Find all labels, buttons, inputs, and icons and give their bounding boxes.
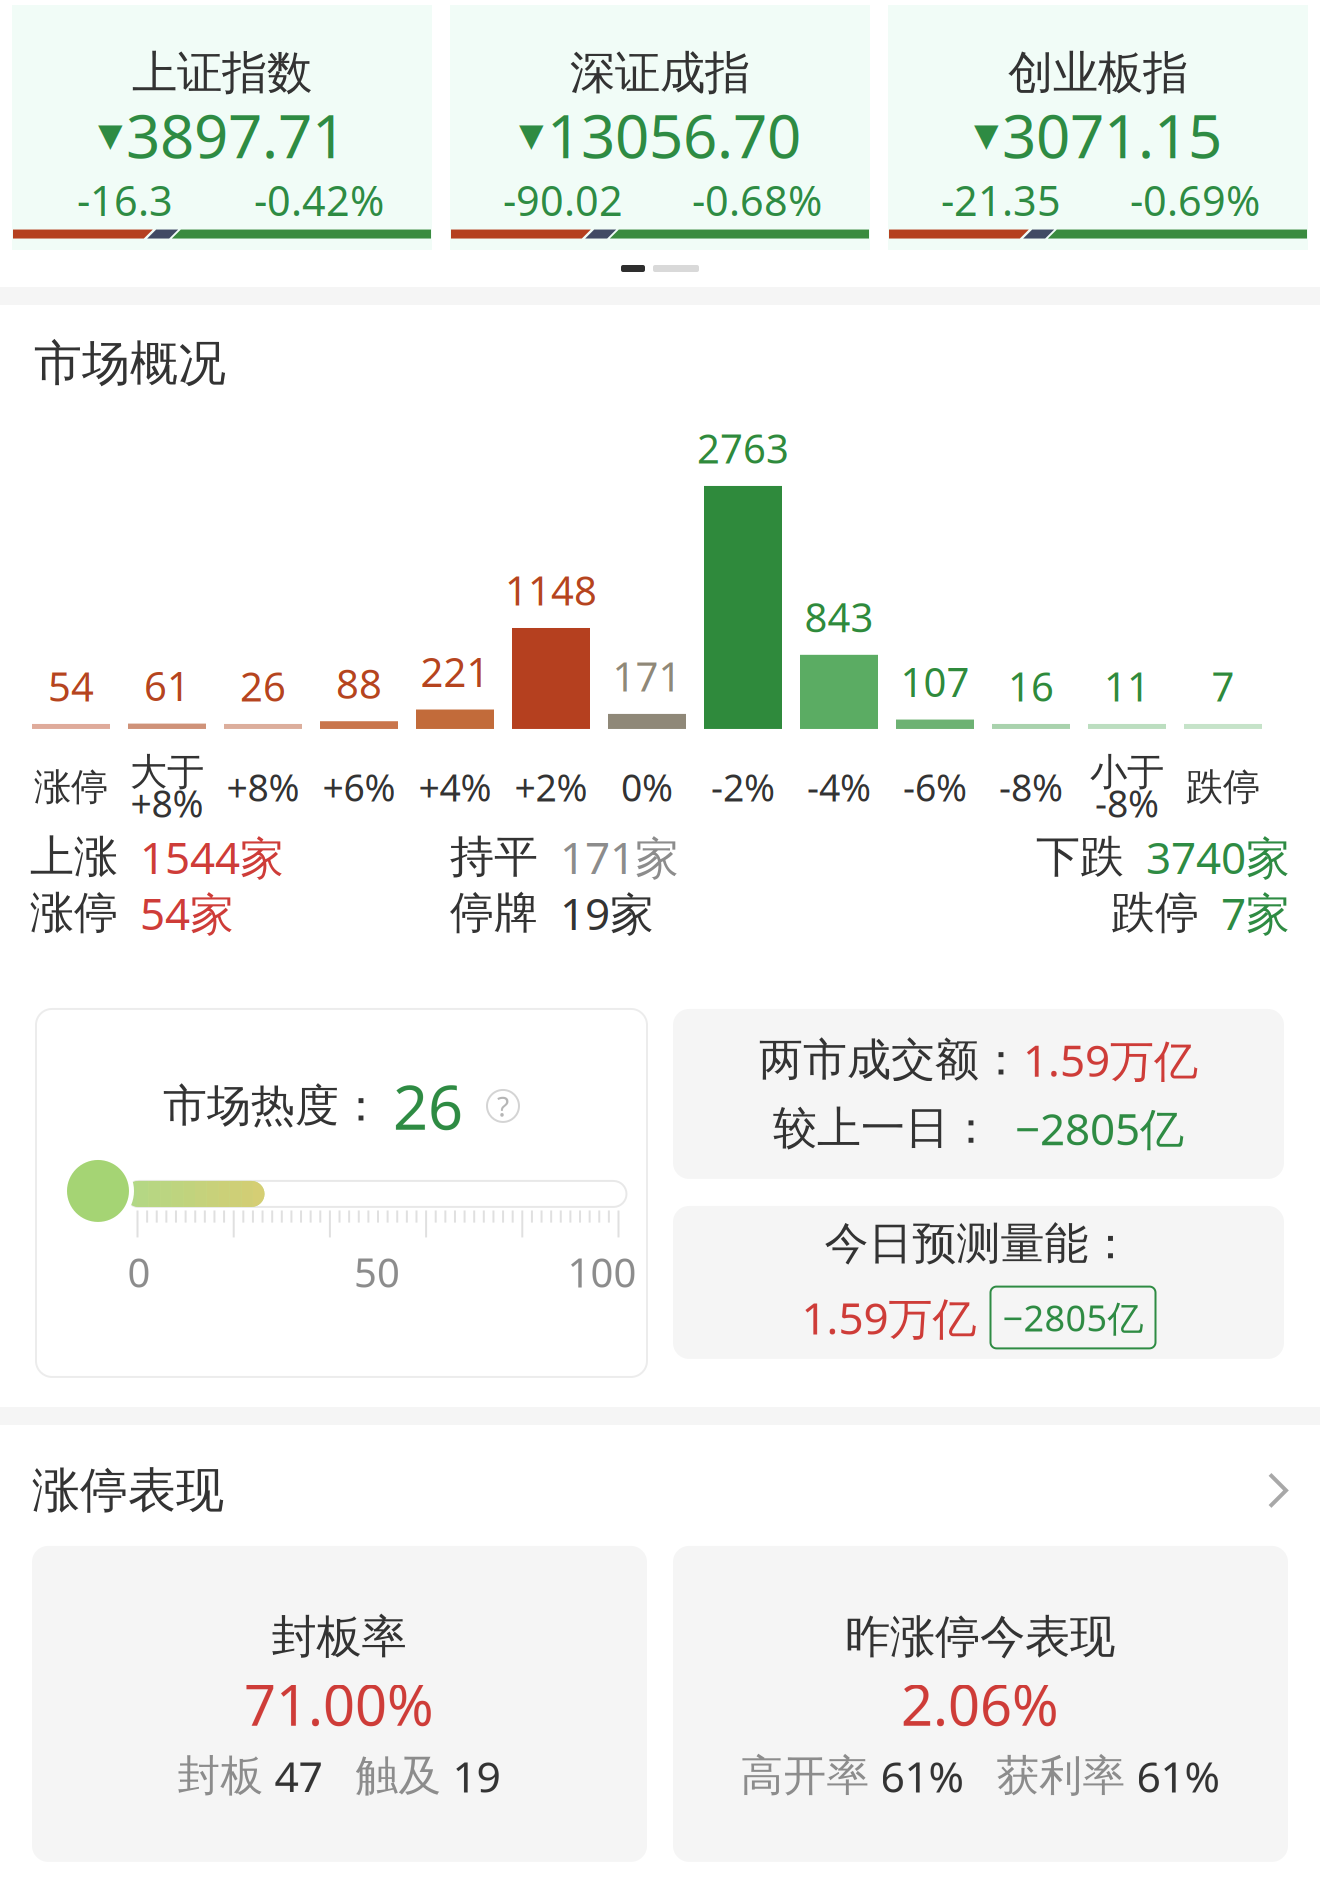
- staticText: 触及: [355, 1750, 441, 1802]
- staticText: ▼: [519, 117, 544, 153]
- staticText: -0.42%: [254, 173, 384, 227]
- staticText: -6%: [903, 762, 967, 812]
- staticText: 47: [274, 1748, 322, 1804]
- staticText: 大于: [130, 749, 204, 795]
- staticText: 50: [354, 1245, 400, 1298]
- staticText: 11: [1104, 659, 1150, 712]
- staticText: 高开率: [740, 1750, 869, 1802]
- staticText: 221: [420, 645, 489, 698]
- staticText: 1544家: [140, 828, 284, 886]
- staticText: 2.06%: [901, 1667, 1059, 1741]
- staticText: 54家: [140, 884, 234, 942]
- staticText: -21.35: [941, 173, 1061, 227]
- staticText: 封板: [177, 1750, 263, 1802]
- staticText: 3071.15: [1002, 95, 1222, 175]
- staticText: 26: [393, 1065, 463, 1147]
- button[interactable]: 封板率: [32, 1546, 647, 1862]
- staticText: 19家: [560, 884, 654, 942]
- staticText: 7: [1211, 659, 1234, 712]
- staticText: 两市成交额：: [759, 1033, 1023, 1087]
- staticText: 跌停: [1186, 764, 1260, 810]
- button[interactable]: 昨涨停今表现: [673, 1546, 1288, 1862]
- staticText: -0.69%: [1130, 173, 1260, 227]
- staticText: +8%: [226, 762, 299, 812]
- staticText: −2805亿: [1002, 1294, 1143, 1341]
- staticText: 2763: [697, 421, 789, 474]
- staticText: −2805亿: [993, 1099, 1184, 1157]
- staticText: 涨停: [34, 764, 108, 810]
- staticText: 深证成指: [570, 45, 750, 101]
- staticText: +4%: [418, 762, 491, 812]
- staticText: 今日预测量能：: [824, 1216, 1132, 1270]
- staticText: 涨停: [30, 886, 118, 940]
- staticText: 107: [900, 655, 969, 708]
- staticText: -0.68%: [692, 173, 822, 227]
- staticText: -8%: [999, 762, 1063, 812]
- staticText: 涨停表现: [32, 1461, 224, 1520]
- staticText: 上证指数: [132, 45, 312, 101]
- staticText: 停牌: [450, 886, 538, 940]
- staticText: 封板率: [271, 1609, 406, 1665]
- staticText: -2%: [711, 762, 775, 812]
- staticText: 19: [452, 1748, 500, 1804]
- staticText: 3897.71: [126, 95, 346, 175]
- staticText: 上涨: [30, 830, 118, 884]
- staticText: 持平: [450, 830, 538, 884]
- staticText: 昨涨停今表现: [845, 1609, 1115, 1665]
- staticText: 市场热度：: [163, 1079, 383, 1133]
- staticText: 市场概况: [34, 334, 226, 393]
- button[interactable]: 涨停表现: [0, 1425, 1320, 1546]
- staticText: 100: [567, 1245, 636, 1298]
- staticText: 843: [804, 590, 873, 643]
- staticText: 0%: [621, 762, 673, 812]
- staticText: 跌停: [1111, 886, 1199, 940]
- staticText: -90.02: [503, 173, 623, 227]
- staticText: ▼: [98, 117, 123, 153]
- staticText: -4%: [807, 762, 871, 812]
- staticText: +2%: [514, 762, 587, 812]
- button[interactable]: 上证指数: [12, 5, 432, 250]
- staticText: 7家: [1221, 884, 1290, 942]
- staticText: 获利率: [996, 1750, 1125, 1802]
- button[interactable]: 创业板指: [888, 5, 1308, 250]
- staticText: 1.59万亿: [801, 1288, 976, 1347]
- staticText: ?: [497, 1087, 509, 1125]
- staticText: 1.59万亿: [1023, 1030, 1198, 1089]
- staticText: ▼: [974, 117, 999, 153]
- staticText: 下跌: [1036, 830, 1124, 884]
- staticText: 16: [1008, 659, 1054, 712]
- staticText: 171家: [560, 828, 679, 886]
- staticText: 小于: [1090, 749, 1164, 795]
- staticText: 54: [48, 659, 94, 712]
- staticText: 171: [612, 649, 681, 702]
- staticText: 较上一日：: [773, 1101, 993, 1155]
- staticText: +6%: [322, 762, 395, 812]
- staticText: -16.3: [77, 173, 173, 227]
- staticText: 创业板指: [1008, 45, 1188, 101]
- staticText: 0: [127, 1245, 150, 1298]
- staticText: +8%: [130, 778, 203, 828]
- staticText: 13056.70: [547, 95, 801, 175]
- staticText: 26: [240, 659, 286, 712]
- staticText: -8%: [1095, 778, 1159, 828]
- staticText: 88: [336, 657, 382, 710]
- staticText: 61%: [880, 1748, 963, 1804]
- staticText: 71.00%: [244, 1667, 434, 1741]
- staticText: 61: [144, 659, 190, 712]
- staticText: 3740家: [1146, 828, 1290, 886]
- staticText: 1148: [505, 563, 597, 616]
- staticText: 61%: [1136, 1748, 1219, 1804]
- button[interactable]: 深证成指: [450, 5, 870, 250]
